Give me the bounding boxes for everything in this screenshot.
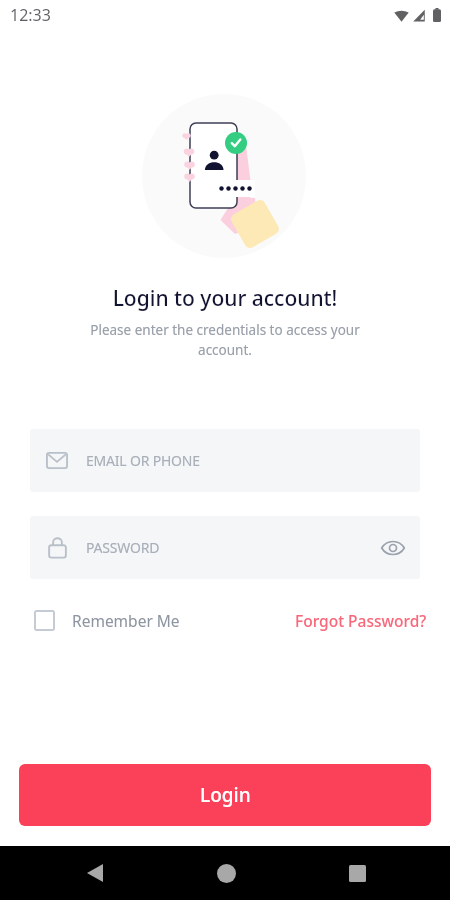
button[interactable]: PASSWORD bbox=[30, 516, 420, 579]
button[interactable]: Show password bbox=[380, 539, 406, 557]
staticText: 12:33 bbox=[10, 4, 51, 26]
staticText: PASSWORD bbox=[86, 538, 160, 557]
button[interactable]: EMAIL OR PHONE bbox=[30, 429, 420, 492]
button[interactable]: Home bbox=[203, 850, 249, 896]
button[interactable]: Recents bbox=[334, 850, 380, 896]
staticText: Login bbox=[200, 782, 251, 808]
staticText: Please enter the credentials to access y… bbox=[72, 321, 378, 359]
staticText: Remember Me bbox=[72, 610, 180, 631]
button[interactable]: Forgot Password? bbox=[291, 604, 431, 637]
button[interactable]: Remember Me bbox=[29, 604, 185, 637]
button[interactable]: Login bbox=[19, 764, 431, 826]
button[interactable]: Back bbox=[72, 850, 118, 896]
staticText: Login to your account! bbox=[0, 284, 450, 313]
staticText: EMAIL OR PHONE bbox=[86, 451, 200, 470]
staticText: Forgot Password? bbox=[295, 610, 427, 631]
